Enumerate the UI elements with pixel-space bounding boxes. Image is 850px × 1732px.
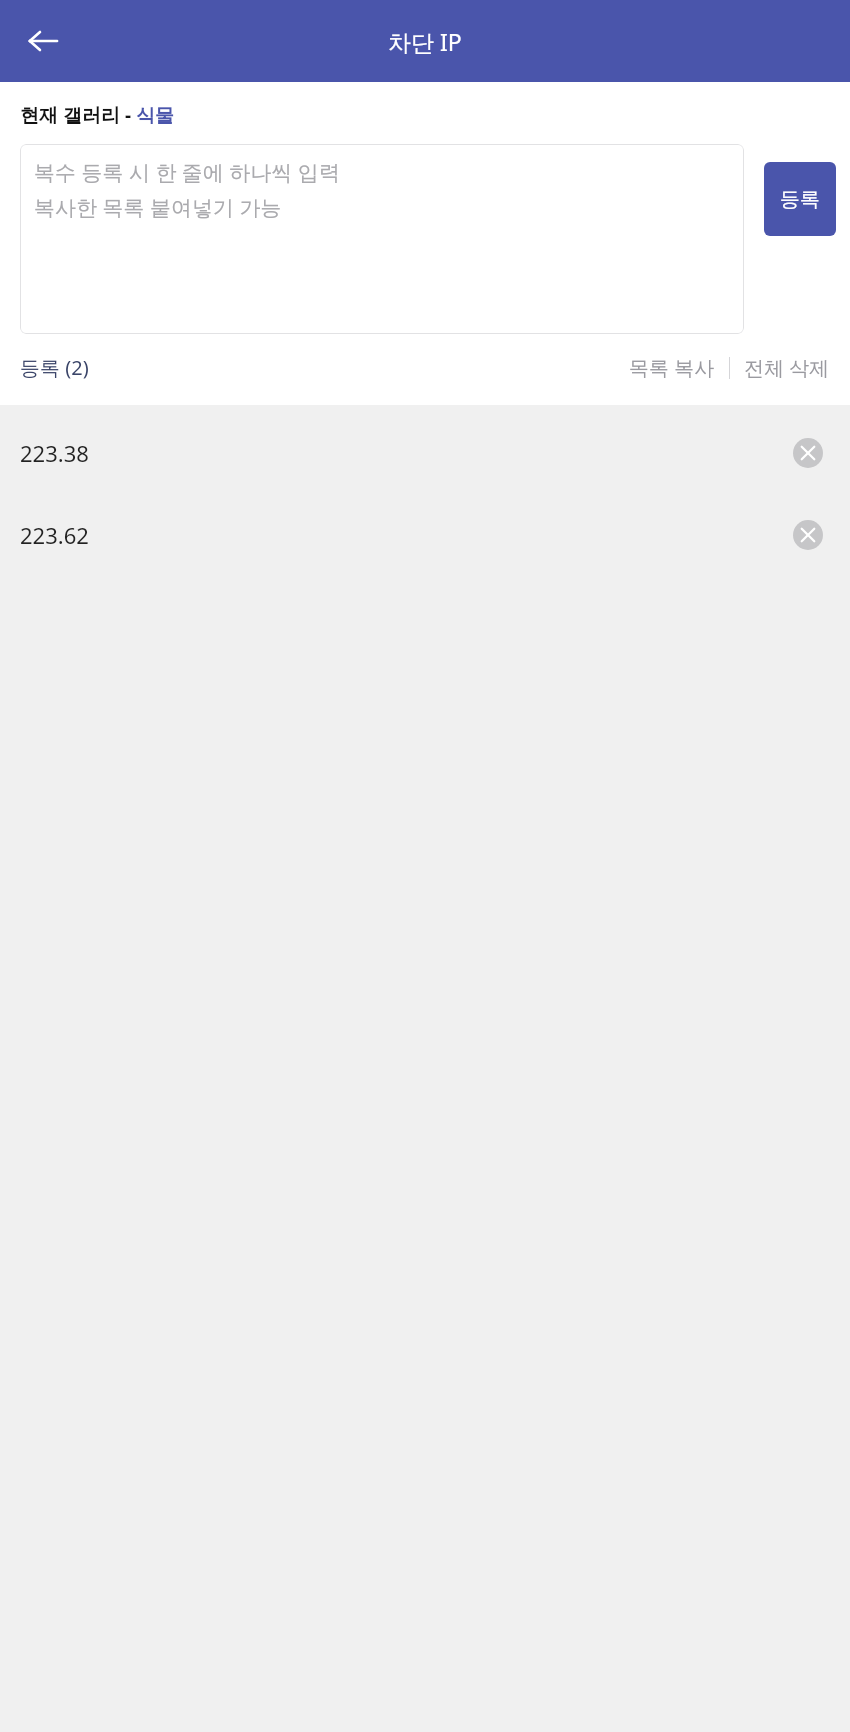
button[interactable]: 복수 등록 시 한 줄에 하나씩 입력 bbox=[20, 144, 744, 334]
staticText: 복사한 목록 붙여넣기 가능 bbox=[34, 193, 282, 222]
staticText: 목록 복사 bbox=[629, 354, 715, 381]
staticText: 223.62 bbox=[20, 520, 89, 550]
button[interactable]: 목록 복사 bbox=[629, 354, 715, 381]
staticText: 등록 (2) bbox=[20, 354, 89, 381]
button[interactable]: 등록 bbox=[764, 162, 836, 236]
button[interactable]: Delete 223.62 bbox=[788, 515, 828, 555]
staticText: 복수 등록 시 한 줄에 하나씩 입력 bbox=[34, 158, 340, 187]
button[interactable]: 223.62 bbox=[0, 494, 850, 576]
button[interactable]: 전체 삭제 bbox=[744, 354, 830, 381]
button[interactable]: 223.38 bbox=[0, 412, 850, 494]
staticText: 차단 IP bbox=[388, 26, 462, 57]
staticText: 등록 bbox=[780, 187, 820, 212]
button[interactable]: 등록 (2) bbox=[20, 354, 89, 381]
staticText: 전체 삭제 bbox=[744, 354, 830, 381]
staticText: 223.38 bbox=[20, 438, 89, 468]
button[interactable]: Delete 223.38 bbox=[788, 433, 828, 473]
button[interactable]: Back bbox=[14, 12, 72, 70]
staticText: 현재 갤러리 - 식물 bbox=[20, 102, 174, 128]
